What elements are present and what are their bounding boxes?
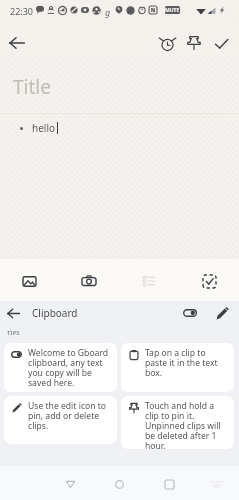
button[interactable]: Pin <box>177 26 211 60</box>
button[interactable]: Home <box>104 469 134 499</box>
button[interactable]: Take photo <box>59 259 119 301</box>
staticText: Title <box>13 74 51 100</box>
button[interactable]: Touch and hold a clip to pin it. Unpinne… <box>121 396 234 449</box>
button[interactable]: Checklist <box>119 259 179 301</box>
staticText: hello <box>32 121 56 135</box>
button[interactable]: Tap on a clip to paste it in the text bo… <box>121 343 234 392</box>
button[interactable]: Recent apps <box>154 469 184 499</box>
button[interactable]: Add image <box>0 259 59 301</box>
staticText: MUTE <box>165 7 180 14</box>
button[interactable]: Reminder <box>150 26 184 60</box>
button[interactable]: Done <box>204 26 238 60</box>
staticText: Tap on a clip to paste it in the text bo… <box>145 347 226 379</box>
staticText: Clipboard <box>32 306 78 320</box>
staticText: 22:30 <box>10 5 34 17</box>
button[interactable]: Back <box>1 301 25 325</box>
button[interactable]: Back <box>0 26 34 60</box>
staticText: Welcome to Gboard clipboard, any text yo… <box>28 347 109 389</box>
button[interactable]: Back <box>55 468 85 498</box>
staticText: TIPS <box>7 329 20 337</box>
button[interactable]: Welcome to Gboard clipboard, any text yo… <box>4 343 117 392</box>
staticText: Touch and hold a clip to pin it. Unpinne… <box>145 400 226 449</box>
staticText: g <box>105 6 111 18</box>
button[interactable]: Edit clips <box>210 301 234 325</box>
button[interactable]: Clipboard on <box>178 301 202 325</box>
staticText: Use the edit icon to pin, add or delete … <box>28 400 109 432</box>
button[interactable]: Use the edit icon to pin, add or delete … <box>4 396 117 444</box>
button[interactable]: Select text <box>179 259 239 301</box>
